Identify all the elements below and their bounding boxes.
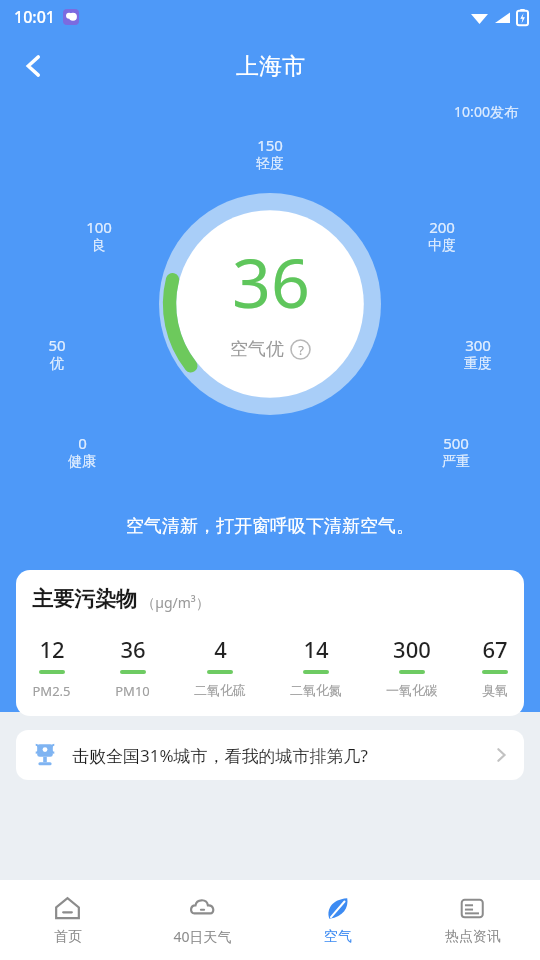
staticText: 击败全国31%城市，看我的城市排第几? (72, 744, 368, 767)
button[interactable]: 热点资讯 (405, 880, 540, 960)
staticText: 二氧化硫 (194, 682, 246, 698)
staticText: 4 (214, 634, 227, 664)
staticText: 良 (92, 237, 106, 255)
button[interactable]: 主要污染物 (16, 570, 524, 716)
staticText: PM10 (115, 682, 150, 700)
staticText: ? (298, 341, 304, 359)
staticText: 严重 (442, 453, 470, 471)
staticText: PM2.5 (32, 682, 71, 700)
button[interactable]: 40日天气 (135, 880, 270, 960)
staticText: 轻度 (256, 155, 284, 173)
staticText: 重度 (464, 355, 492, 373)
staticText: 一氧化碳 (386, 682, 438, 698)
staticText: 67 (482, 634, 508, 664)
staticText: 200 (429, 217, 455, 237)
staticText: 300 (465, 335, 491, 355)
staticText: 12 (39, 634, 65, 664)
staticText: 二氧化氮 (290, 682, 342, 698)
staticText: 14 (303, 634, 329, 664)
staticText: 10:01 (14, 6, 55, 28)
staticText: 空气清新，打开窗呼吸下清新空气。 (126, 515, 414, 538)
staticText: 150 (257, 135, 283, 155)
button[interactable]: 空气 (270, 880, 405, 960)
button[interactable]: 击败全国31%城市，看我的城市排第几? (16, 730, 524, 780)
staticText: 主要污染物 (32, 586, 137, 612)
staticText: 500 (443, 433, 469, 453)
staticText: 优 (50, 355, 64, 373)
staticText: 0 (78, 433, 87, 453)
staticText: 36 (232, 235, 310, 328)
staticText: 10:00发布 (454, 102, 518, 121)
staticText: 100 (86, 217, 112, 237)
button[interactable]: Back (10, 42, 58, 90)
button[interactable]: 首页 (0, 880, 135, 960)
staticText: 40日天气 (173, 927, 232, 946)
staticText: （µg/m³） (141, 593, 210, 612)
staticText: 热点资讯 (445, 928, 501, 946)
staticText: 50 (48, 335, 66, 355)
staticText: 健康 (68, 453, 96, 471)
button[interactable]: Air quality help (290, 339, 311, 360)
staticText: 上海市 (236, 52, 305, 81)
staticText: 300 (393, 634, 431, 664)
staticText: 空气优 (230, 338, 284, 361)
staticText: 中度 (428, 237, 456, 255)
staticText: 空气 (324, 928, 352, 946)
staticText: 首页 (54, 928, 82, 946)
staticText: 臭氧 (482, 682, 508, 698)
staticText: 36 (120, 634, 146, 664)
